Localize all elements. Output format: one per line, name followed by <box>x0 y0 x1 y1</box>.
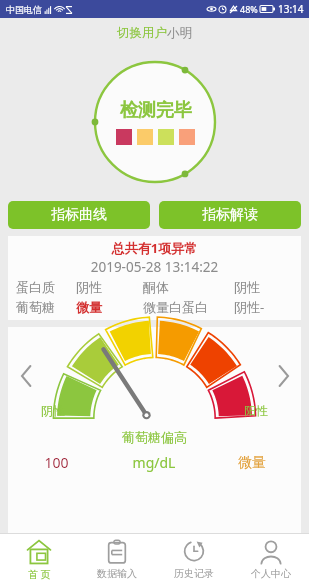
staticText: 阴性 <box>76 279 143 295</box>
staticText: 指标曲线 <box>51 206 107 224</box>
staticText: 13:14 <box>278 2 304 16</box>
staticText: 葡萄糖 <box>16 299 76 315</box>
staticText: 检测完毕 <box>120 99 192 122</box>
staticText: 2019-05-28 13:14:22 <box>8 258 301 276</box>
staticText: 阳性 <box>244 403 268 418</box>
button[interactable]: Previous indicator <box>12 362 40 390</box>
staticText: 个人中心 <box>251 567 291 580</box>
button[interactable]: 切换用户 <box>0 23 309 43</box>
staticText: 微量 <box>203 454 301 472</box>
staticText: 48% <box>240 3 258 15</box>
staticText: 数据输入 <box>97 567 137 580</box>
staticText: 阴性- <box>234 298 301 316</box>
staticText: 葡萄糖偏高 <box>8 429 301 445</box>
button[interactable]: 数据输入 <box>78 534 155 584</box>
staticText: 阴性 <box>234 279 301 295</box>
staticText: 蛋白质 <box>16 279 76 295</box>
staticText: 中国电信 <box>6 4 42 15</box>
staticText: 历史记录 <box>174 567 214 580</box>
staticText: 总共有1项异常 <box>8 239 301 257</box>
button[interactable]: 历史记录 <box>155 534 232 584</box>
button[interactable]: Next indicator <box>269 362 297 390</box>
staticText: 指标解读 <box>202 206 258 224</box>
staticText: mg/dL <box>105 453 203 472</box>
button[interactable]: 指标解读 <box>159 201 301 229</box>
staticText: 100 <box>8 453 105 472</box>
staticText: 微量白蛋白 <box>143 299 234 315</box>
staticText: 切换用户 <box>117 25 167 41</box>
staticText: 微量 <box>76 299 143 315</box>
staticText: 酮体 <box>143 279 234 295</box>
staticText: 首 页 <box>28 567 51 581</box>
staticText: 阴性 <box>41 403 65 418</box>
button[interactable]: 指标曲线 <box>8 201 150 229</box>
button[interactable]: 首 页 <box>0 534 78 584</box>
button[interactable]: 个人中心 <box>232 534 309 584</box>
staticText: 小明 <box>167 25 192 41</box>
